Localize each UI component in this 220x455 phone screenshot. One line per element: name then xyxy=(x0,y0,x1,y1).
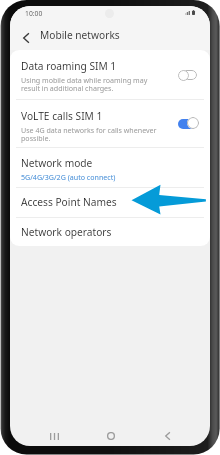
button[interactable]: Turn off xyxy=(178,118,198,130)
button[interactable]: Back xyxy=(16,26,36,50)
button[interactable]: Data roaming SIM 1 xyxy=(10,50,210,99)
button[interactable]: Access Point Names xyxy=(10,188,210,217)
button[interactable]: Network mode xyxy=(10,148,210,187)
staticText: Using mobile data while roaming may resu… xyxy=(21,75,148,93)
staticText: Mobile networks xyxy=(40,28,120,42)
button[interactable]: Back xyxy=(153,426,181,446)
button[interactable]: Network operators xyxy=(10,218,210,246)
button[interactable]: Turn on xyxy=(178,69,198,81)
button[interactable]: Recent apps xyxy=(40,426,68,446)
staticText: Use 4G data networks for calls whenever … xyxy=(21,125,157,143)
staticText: Network operators xyxy=(21,225,112,239)
staticText: Data roaming SIM 1 xyxy=(21,59,117,73)
staticText: Access Point Names xyxy=(21,195,117,209)
staticText: 10:00 xyxy=(25,9,43,18)
button[interactable]: Home xyxy=(97,426,125,446)
button[interactable]: VoLTE calls SIM 1 xyxy=(10,100,210,147)
staticText: 5G/4G/3G/2G (auto connect) xyxy=(21,172,116,182)
staticText: VoLTE calls SIM 1 xyxy=(21,109,103,123)
staticText: Network mode xyxy=(21,156,93,170)
